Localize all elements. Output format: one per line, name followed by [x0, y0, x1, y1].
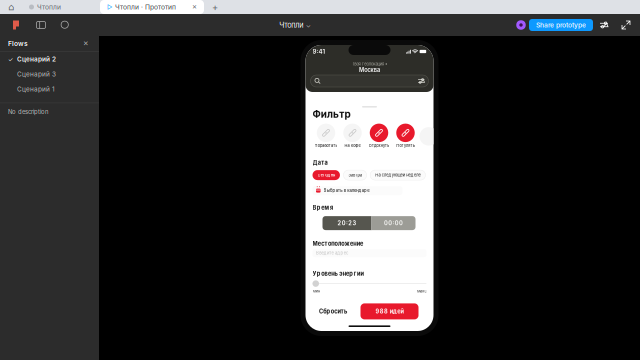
- button[interactable]: На кофе: [340, 124, 365, 149]
- button[interactable]: Share prototype: [529, 19, 593, 31]
- staticText: Flows: [8, 39, 28, 48]
- staticText: Время: [312, 204, 333, 211]
- staticText: No description: [8, 108, 48, 115]
- button[interactable]: Введите адрес: [312, 249, 426, 257]
- button[interactable]: Comments: [53, 14, 77, 36]
- staticText: Введите адрес: [316, 251, 348, 256]
- button[interactable]: Выбрать в календаре: [312, 186, 402, 195]
- staticText: Макс: [417, 289, 426, 293]
- button[interactable]: ✓: [0, 52, 99, 67]
- staticText: Чтопли: [37, 3, 61, 11]
- staticText: Местоположение: [312, 240, 363, 247]
- staticText: +: [212, 1, 218, 13]
- button[interactable]: Чтопли: [279, 21, 311, 29]
- button[interactable]: Сценарий 1: [0, 82, 99, 97]
- button[interactable]: Погулять: [393, 124, 418, 149]
- staticText: Погулять: [396, 143, 415, 148]
- button[interactable]: Close flows: [81, 38, 91, 48]
- button[interactable]: Full screen: [615, 14, 637, 36]
- button[interactable]: Figma: [3, 14, 29, 36]
- staticText: Сценарий 2: [17, 55, 56, 63]
- staticText: ✕: [192, 3, 197, 10]
- staticText: Сбросить: [319, 308, 347, 315]
- staticText: 00:00: [384, 220, 403, 226]
- staticText: Сценарий 1: [17, 85, 55, 93]
- button[interactable]: На следующей неделе: [370, 170, 425, 180]
- button[interactable]: ▷: [100, 0, 204, 14]
- button[interactable]: New tab: [204, 0, 226, 14]
- button[interactable]: Завтра: [343, 170, 367, 180]
- staticText: Уровень энергии: [312, 270, 363, 277]
- staticText: Твоя геолокация: [352, 61, 384, 66]
- staticText: 9:41: [312, 48, 325, 55]
- staticText: 20:23: [337, 220, 357, 226]
- staticText: ✕: [83, 40, 89, 47]
- button[interactable]: Чтопли: [22, 0, 100, 14]
- button[interactable]: Отдохнуть: [366, 124, 391, 149]
- staticText: Дата: [312, 159, 327, 166]
- staticText: На следующей неделе: [375, 173, 420, 177]
- staticText: Сегодня: [317, 173, 335, 177]
- button[interactable]: [310, 75, 428, 87]
- staticText: Москва: [359, 67, 380, 73]
- staticText: ⌂: [8, 2, 14, 12]
- staticText: Выбрать в календаре: [324, 188, 369, 193]
- button[interactable]: Account: [513, 14, 529, 36]
- button[interactable]: Home: [0, 0, 22, 14]
- staticText: Share prototype: [536, 21, 586, 29]
- button[interactable]: Сценарий 3: [0, 67, 99, 82]
- staticText: Чтопли · Прототип: [115, 3, 176, 11]
- staticText: Завтра: [348, 173, 362, 177]
- staticText: ✓: [8, 56, 13, 63]
- staticText: 988 идей: [375, 308, 404, 315]
- staticText: Чтопли: [279, 21, 303, 29]
- staticText: Сценарий 3: [17, 70, 56, 78]
- button[interactable]: Prototype settings: [593, 14, 615, 36]
- button[interactable]: Поработать: [313, 124, 338, 149]
- button[interactable]: Сегодня: [312, 170, 340, 180]
- staticText: ⌄: [306, 21, 311, 29]
- staticText: Поработать: [315, 143, 337, 148]
- staticText: Мин: [312, 289, 320, 293]
- staticText: Фильтр: [312, 108, 350, 120]
- staticText: Отдохнуть: [369, 143, 389, 148]
- staticText: ▷: [107, 3, 112, 11]
- button[interactable]: Toggle sidebar: [29, 14, 53, 36]
- button[interactable]: Сбросить: [314, 303, 351, 319]
- staticText: На кофе: [344, 143, 361, 148]
- button[interactable]: 988 идей: [360, 303, 418, 319]
